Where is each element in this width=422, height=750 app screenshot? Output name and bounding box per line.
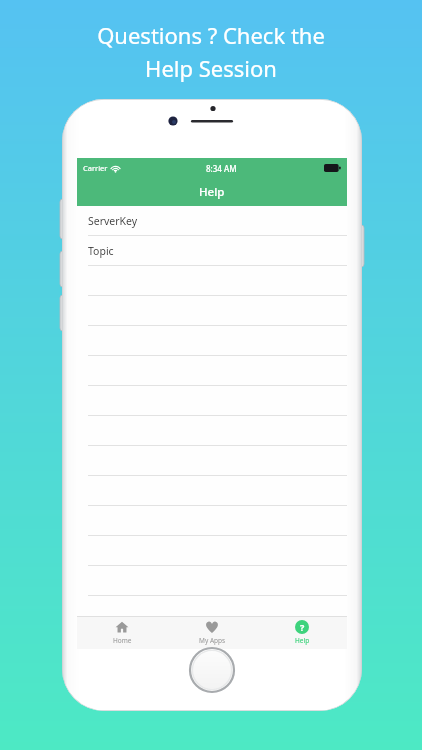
- staticText: ServerKey: [88, 214, 138, 228]
- button[interactable]: Topic: [77, 236, 347, 266]
- button[interactable]: Home button: [189, 647, 235, 693]
- button[interactable]: ?: [257, 616, 347, 649]
- button[interactable]: Home: [77, 616, 167, 649]
- staticText: Help: [199, 184, 225, 200]
- staticText: 8:34 AM: [206, 163, 237, 174]
- staticText: Home: [113, 636, 132, 645]
- button[interactable]: ServerKey: [77, 206, 347, 236]
- staticText: Topic: [88, 244, 114, 258]
- staticText: Help: [295, 636, 310, 645]
- staticText: ?: [300, 621, 305, 633]
- staticText: Questions ? Check the: [97, 20, 325, 50]
- staticText: My Apps: [199, 636, 226, 645]
- button[interactable]: My Apps: [167, 616, 257, 649]
- staticText: Carrier: [83, 163, 108, 173]
- staticText: Help Session: [145, 53, 277, 83]
